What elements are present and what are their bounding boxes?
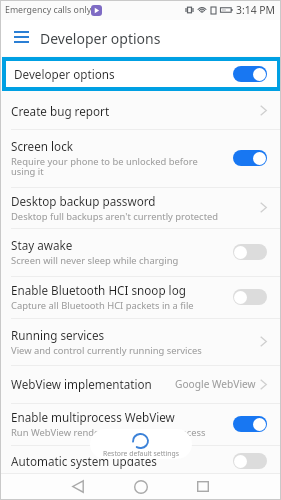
staticText: Desktop backup password <box>11 193 156 209</box>
button[interactable]: WebView implementation <box>0 365 281 403</box>
staticText: Developer options <box>14 66 115 82</box>
button[interactable]: Enable multiprocess WebView <box>0 403 281 445</box>
staticText: Enable Bluetooth HCI snoop log <box>11 282 186 298</box>
staticText: Desktop full backups aren't currently pr… <box>11 210 219 223</box>
button[interactable]: Enable Bluetooth HCI snoop log <box>0 276 281 318</box>
button[interactable]: Create bug report <box>0 92 281 129</box>
button[interactable]: Automatic system updates <box>0 445 281 477</box>
staticText: Running services <box>11 327 105 343</box>
button[interactable]: Desktop backup password <box>0 187 281 228</box>
button[interactable]: Stay awake <box>0 228 281 276</box>
staticText: Screen will never sleep while charging <box>11 254 179 267</box>
staticText: Automatic system updates <box>11 453 157 469</box>
staticText: Require your phone to be unlocked before… <box>11 155 207 178</box>
staticText: Capture all Bluetooth HCI packets in a f… <box>11 299 194 312</box>
staticText: Screen lock <box>11 138 74 154</box>
staticText: Google WebView <box>175 377 256 391</box>
button[interactable]: Home <box>121 473 161 500</box>
staticText: Create bug report <box>11 103 110 119</box>
staticText: Developer options <box>40 29 161 48</box>
staticText: Enable multiprocess WebView <box>11 409 175 425</box>
staticText: Stay awake <box>11 237 73 253</box>
button[interactable]: Menu <box>7 23 37 53</box>
button[interactable]: Developer options <box>6 61 277 87</box>
staticText: Emergency calls only <box>5 4 92 16</box>
button[interactable]: Running services <box>0 318 281 365</box>
staticText: Restore default settings <box>103 449 179 458</box>
button[interactable]: Screen lock <box>0 129 281 187</box>
staticText: Run WebView renders in an isolated proce… <box>11 426 206 439</box>
staticText: View and control currently running servi… <box>11 344 202 357</box>
staticText: 3:14 PM <box>236 3 276 17</box>
button[interactable]: Back <box>58 473 98 500</box>
staticText: WebView implementation <box>11 376 152 392</box>
button[interactable]: Recents <box>183 473 223 500</box>
